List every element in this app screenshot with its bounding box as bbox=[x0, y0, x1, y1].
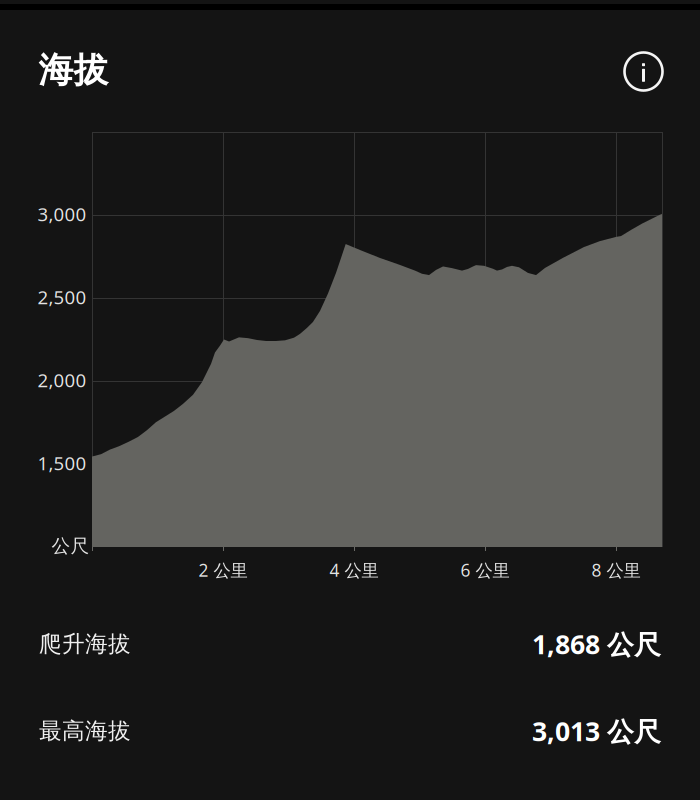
staticText: 6 公里 bbox=[460, 558, 509, 581]
staticText: 2 公里 bbox=[198, 558, 247, 581]
staticText: 1,868 公尺 bbox=[532, 626, 661, 662]
staticText: 4 公里 bbox=[329, 558, 378, 581]
staticText: 海拔 bbox=[38, 49, 108, 92]
staticText: 最高海拔 bbox=[39, 717, 131, 745]
button[interactable]: Info bbox=[616, 44, 670, 98]
staticText: 公尺 bbox=[51, 534, 89, 557]
staticText: 3,013 公尺 bbox=[532, 713, 661, 749]
staticText: 8 公里 bbox=[591, 558, 640, 581]
staticText: 2,500 bbox=[37, 285, 86, 309]
staticText: 爬升海拔 bbox=[39, 630, 131, 658]
staticText: 1,500 bbox=[37, 451, 86, 475]
staticText: 2,000 bbox=[37, 368, 86, 392]
staticText: 3,000 bbox=[37, 202, 86, 226]
